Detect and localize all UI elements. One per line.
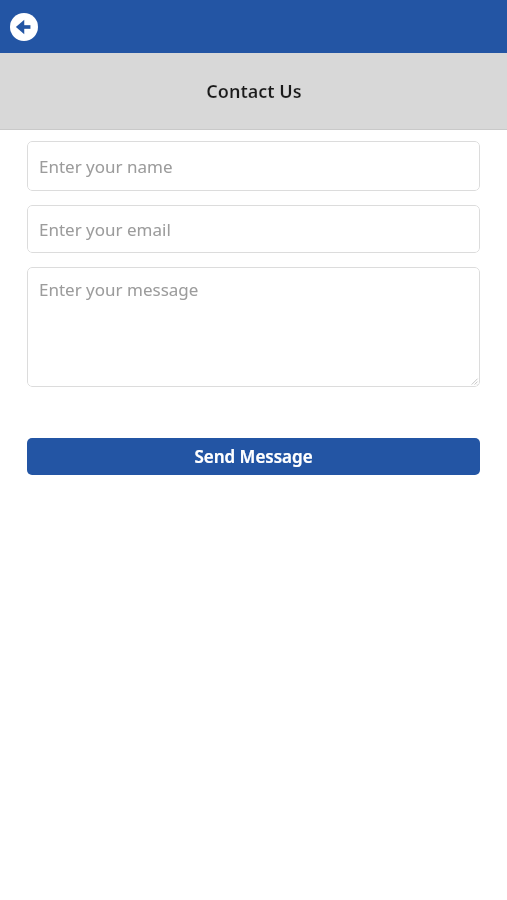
button[interactable]: Enter your message (27, 267, 480, 387)
staticText: Enter your name (39, 155, 173, 178)
button[interactable]: Enter your email (27, 205, 480, 253)
staticText: Send Message (194, 445, 313, 468)
button[interactable]: Send Message (27, 438, 480, 475)
staticText: Contact Us (206, 79, 302, 104)
button[interactable]: Enter your name (27, 141, 480, 191)
staticText: Enter your message (39, 278, 199, 301)
button[interactable]: Back (10, 13, 38, 41)
staticText: Enter your email (39, 218, 171, 241)
